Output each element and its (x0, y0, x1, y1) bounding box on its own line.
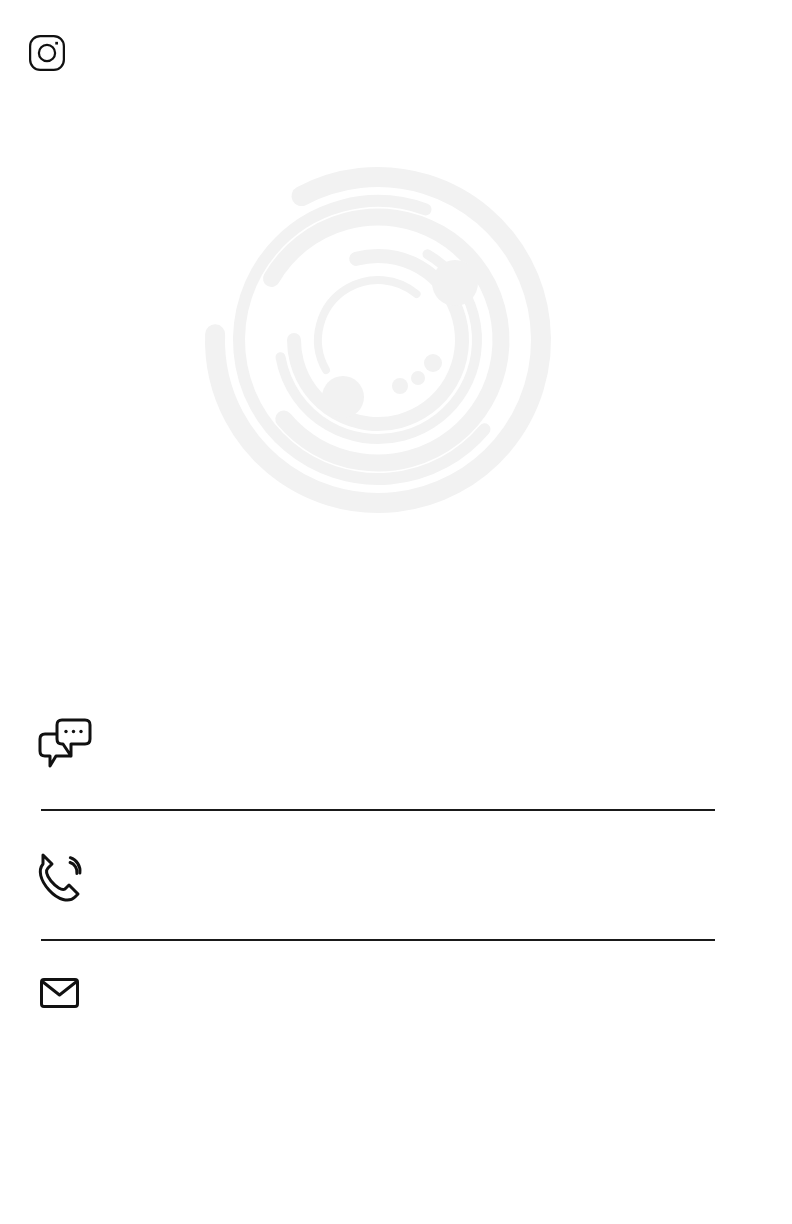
button[interactable]: Call (0, 813, 792, 939)
button[interactable]: Email (0, 943, 792, 1053)
button[interactable]: Camera (29, 35, 65, 71)
button[interactable]: Messages (0, 700, 792, 809)
